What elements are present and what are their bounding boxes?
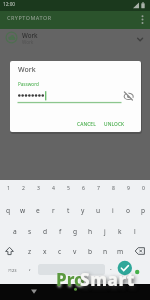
- staticText: o: [126, 206, 130, 215]
- staticText: n: [103, 247, 108, 256]
- staticText: j: [104, 227, 106, 236]
- staticText: UNLOCK: [104, 121, 125, 128]
- staticText: p: [141, 206, 146, 215]
- staticText: Work: [22, 39, 34, 45]
- staticText: f: [59, 227, 62, 236]
- staticText: d: [43, 227, 48, 236]
- staticText: b: [88, 247, 93, 256]
- staticText: .: [110, 263, 112, 272]
- staticText: l: [134, 227, 136, 236]
- staticText: e: [36, 206, 40, 215]
- staticText: 3: [37, 185, 40, 192]
- staticText: 2: [22, 185, 25, 192]
- staticText: t: [67, 206, 70, 215]
- staticText: z: [28, 247, 32, 256]
- staticText: s: [28, 227, 32, 236]
- staticText: 7: [97, 185, 100, 192]
- staticText: a: [13, 227, 17, 236]
- staticText: g: [73, 227, 78, 236]
- staticText: h: [88, 227, 93, 236]
- staticText: ?123: [8, 268, 17, 273]
- staticText: x: [43, 247, 47, 256]
- staticText: 8: [112, 185, 115, 192]
- staticText: c: [58, 247, 62, 256]
- staticText: 0: [142, 185, 145, 192]
- staticText: CANCEL: [77, 121, 96, 128]
- staticText: i: [112, 206, 114, 215]
- staticText: 1: [7, 185, 10, 192]
- staticText: q: [6, 206, 11, 215]
- staticText: Work: [18, 65, 36, 75]
- staticText: 9: [127, 185, 130, 192]
- staticText: 5: [67, 185, 70, 192]
- staticText: Password: [18, 81, 39, 87]
- staticText: CRYPTOMATOR: [7, 14, 52, 21]
- staticText: v: [73, 247, 77, 256]
- staticText: Smart: [80, 268, 136, 291]
- staticText: r: [52, 206, 55, 215]
- staticText: ,: [29, 263, 31, 272]
- staticText: w: [20, 206, 26, 215]
- staticText: m: [117, 247, 124, 256]
- staticText: y: [81, 206, 85, 215]
- staticText: 4: [52, 185, 55, 192]
- staticText: Work: [22, 31, 38, 39]
- staticText: 12:00: [3, 1, 16, 7]
- staticText: u: [96, 206, 101, 215]
- staticText: Pro: [56, 268, 85, 291]
- staticText: 6: [82, 185, 85, 192]
- staticText: k: [118, 227, 122, 236]
